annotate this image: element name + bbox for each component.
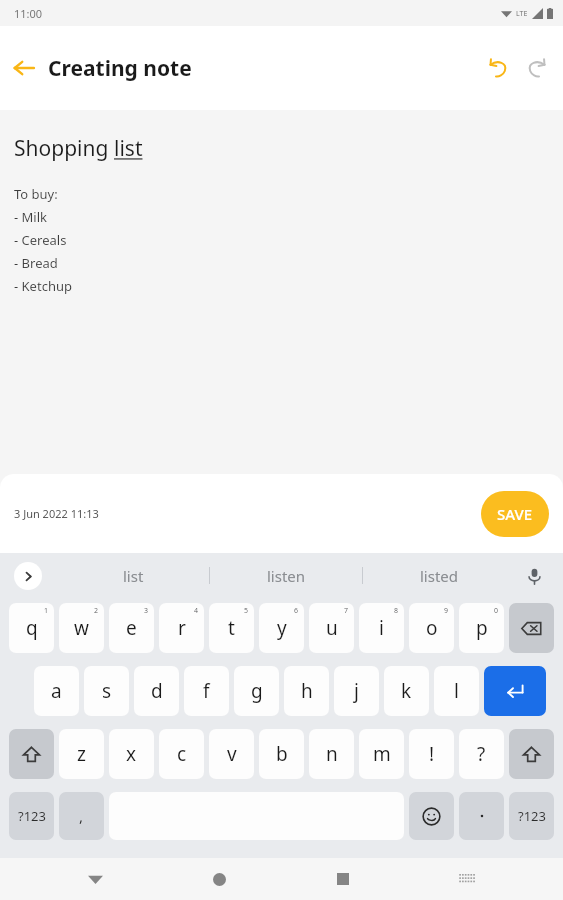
button[interactable]: h xyxy=(284,666,329,716)
staticText: Shopping xyxy=(14,134,114,163)
staticText: a xyxy=(51,678,62,704)
button[interactable]: Comma xyxy=(59,792,104,840)
staticText: s xyxy=(102,678,112,704)
button[interactable]: v xyxy=(209,729,254,779)
button[interactable]: Voice input xyxy=(519,561,549,591)
button[interactable]: d xyxy=(134,666,179,716)
staticText: listen xyxy=(267,566,306,586)
staticText: z xyxy=(77,741,86,767)
button[interactable]: listen xyxy=(210,553,362,598)
button[interactable]: t xyxy=(209,603,254,653)
staticText: 1 xyxy=(44,606,49,616)
staticText: 6 xyxy=(294,606,299,616)
button[interactable]: listed xyxy=(363,553,515,598)
button[interactable]: Home xyxy=(157,858,281,900)
button[interactable]: Undo xyxy=(479,49,517,87)
staticText: t xyxy=(228,615,235,641)
staticText: o xyxy=(426,615,438,641)
button[interactable]: Enter xyxy=(484,666,546,716)
staticText: Creating note xyxy=(48,54,192,83)
button[interactable]: SAVE xyxy=(481,491,549,537)
button[interactable]: w xyxy=(59,603,104,653)
staticText: list xyxy=(123,566,144,586)
staticText: x xyxy=(126,741,137,767)
button[interactable]: list xyxy=(58,553,209,598)
button[interactable]: Backspace xyxy=(509,603,554,653)
staticText: r xyxy=(178,615,186,641)
staticText: c xyxy=(177,741,187,767)
staticText: 2 xyxy=(94,606,99,616)
button[interactable]: j xyxy=(334,666,379,716)
staticText: , xyxy=(79,806,84,826)
staticText: b xyxy=(276,741,288,767)
button[interactable]: Period xyxy=(459,792,504,840)
button[interactable]: Back xyxy=(34,858,157,900)
button[interactable]: m xyxy=(359,729,404,779)
button[interactable]: ?123 xyxy=(9,792,54,840)
button[interactable]: Redo xyxy=(517,49,555,87)
button[interactable]: ?123 xyxy=(509,792,554,840)
button[interactable]: Shift xyxy=(509,729,554,779)
button[interactable]: n xyxy=(309,729,354,779)
button[interactable]: g xyxy=(234,666,279,716)
staticText: k xyxy=(401,678,412,704)
button[interactable]: More suggestions xyxy=(14,562,42,590)
button[interactable]: p xyxy=(459,603,504,653)
staticText: l xyxy=(454,678,459,704)
staticText: p xyxy=(476,615,488,641)
staticText: y xyxy=(277,615,287,641)
staticText: SAVE xyxy=(497,504,533,524)
button[interactable]: c xyxy=(159,729,204,779)
staticText: 0 xyxy=(494,606,499,616)
button[interactable]: Hide keyboard xyxy=(405,858,529,900)
staticText: j xyxy=(354,678,359,704)
staticText: h xyxy=(301,678,313,704)
staticText: ? xyxy=(477,741,486,767)
staticText: - Bread xyxy=(14,254,58,272)
staticText: i xyxy=(379,615,384,641)
staticText: 4 xyxy=(194,606,199,616)
button[interactable]: Shift xyxy=(9,729,54,779)
button[interactable]: ! xyxy=(409,729,454,779)
button[interactable]: y xyxy=(259,603,304,653)
button[interactable]: b xyxy=(259,729,304,779)
staticText: 3 Jun 2022 11:13 xyxy=(14,506,99,521)
staticText: 8 xyxy=(394,606,399,616)
staticText: 5 xyxy=(244,606,249,616)
button[interactable]: o xyxy=(409,603,454,653)
button[interactable]: ? xyxy=(459,729,504,779)
staticText: w xyxy=(74,615,89,641)
staticText: g xyxy=(251,678,263,704)
button[interactable]: i xyxy=(359,603,404,653)
staticText: v xyxy=(227,741,237,767)
staticText: 7 xyxy=(344,606,349,616)
button[interactable]: r xyxy=(159,603,204,653)
staticText: 9 xyxy=(444,606,449,616)
staticText: 3 xyxy=(144,606,149,616)
staticText: - Ketchup xyxy=(14,277,72,295)
staticText: ?123 xyxy=(518,807,546,825)
button[interactable]: Emoji xyxy=(409,792,454,840)
button[interactable]: q xyxy=(9,603,54,653)
staticText: To buy: xyxy=(14,185,58,203)
button[interactable]: z xyxy=(59,729,104,779)
staticText: m xyxy=(373,741,391,767)
staticText: n xyxy=(326,741,338,767)
staticText: list xyxy=(114,134,143,163)
staticText: q xyxy=(26,615,38,641)
button[interactable]: f xyxy=(184,666,229,716)
staticText: f xyxy=(203,678,210,704)
button[interactable]: x xyxy=(109,729,154,779)
button[interactable]: k xyxy=(384,666,429,716)
button[interactable]: u xyxy=(309,603,354,653)
button[interactable]: Back xyxy=(0,44,48,92)
staticText: u xyxy=(326,615,338,641)
button[interactable]: e xyxy=(109,603,154,653)
staticText: - Milk xyxy=(14,208,48,226)
button[interactable]: Recents xyxy=(281,858,405,900)
button[interactable]: a xyxy=(34,666,79,716)
button[interactable]: l xyxy=(434,666,479,716)
staticText: d xyxy=(151,678,163,704)
button[interactable]: s xyxy=(84,666,129,716)
